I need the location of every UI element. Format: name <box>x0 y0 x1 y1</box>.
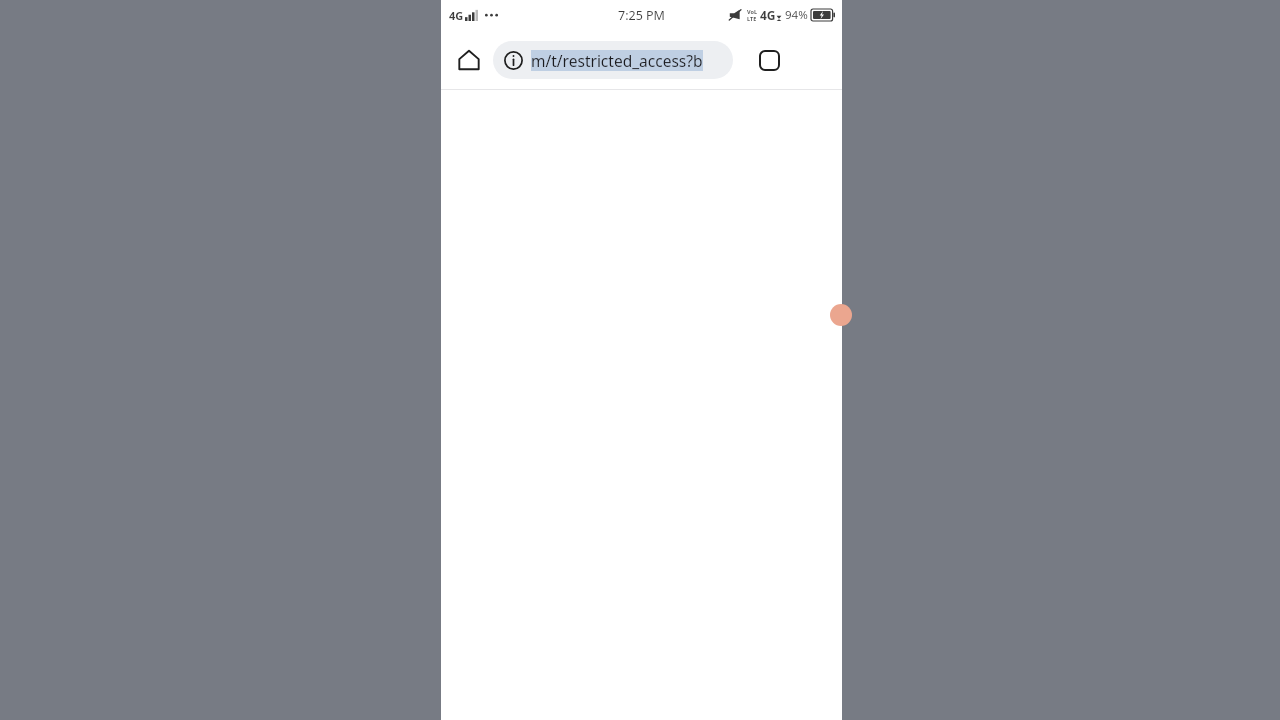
staticText: 94% <box>785 7 808 23</box>
staticText: 7:25 PM <box>618 7 665 24</box>
staticText: LTE <box>747 15 757 22</box>
button[interactable]: Home <box>450 41 488 79</box>
staticText: 4G <box>760 7 776 23</box>
button[interactable]: m/t/restricted_access?b <box>493 41 733 79</box>
staticText: 4G <box>449 8 464 23</box>
staticText: VoL <box>747 8 757 15</box>
button[interactable]: Tab switcher <box>750 41 788 79</box>
staticText: m/t/restricted_access?b <box>531 50 703 71</box>
